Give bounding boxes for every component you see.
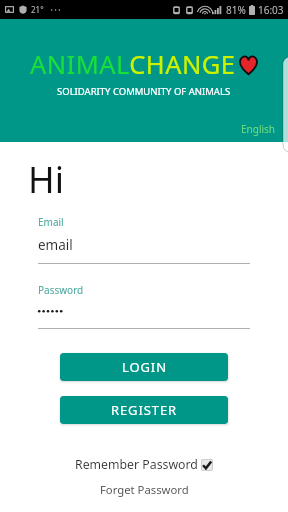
- button[interactable]: Open navigation drawer: [283, 57, 288, 152]
- staticText: Remember Password: [75, 456, 198, 473]
- staticText: email: [38, 236, 73, 254]
- staticText: 81%: [226, 3, 246, 17]
- button[interactable]: Email: [38, 215, 250, 264]
- button[interactable]: Password: [38, 283, 250, 329]
- button[interactable]: LOGIN: [60, 353, 228, 381]
- staticText: ANIMALCHANGE: [30, 47, 236, 82]
- button[interactable]: English: [239, 120, 278, 138]
- staticText: Password: [38, 283, 84, 297]
- staticText: English: [241, 122, 276, 136]
- staticText: 21°: [31, 4, 44, 15]
- staticText: 16:03: [258, 3, 284, 17]
- staticText: SOLIDARITY COMMUNITY OF ANIMALS: [57, 85, 231, 98]
- staticText: LOGIN: [122, 358, 167, 376]
- staticText: Hi: [28, 155, 64, 204]
- button[interactable]: Remember password checkbox: [201, 459, 213, 471]
- button[interactable]: Forget Password: [100, 482, 189, 497]
- button[interactable]: REGISTER: [60, 396, 228, 424]
- staticText: Email: [38, 215, 64, 229]
- button[interactable]: Remember Password: [75, 456, 213, 473]
- staticText: REGISTER: [111, 401, 178, 419]
